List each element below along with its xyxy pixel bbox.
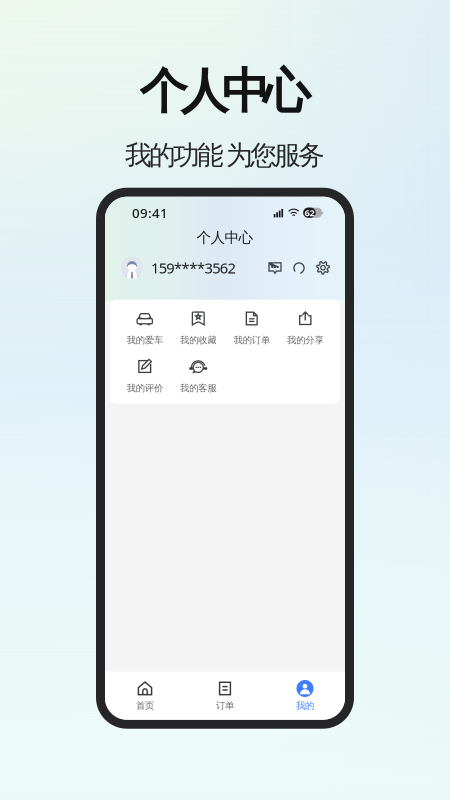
button[interactable]: 订单 [185,677,265,715]
staticText: 62 [304,206,314,219]
button[interactable]: Messages [268,261,282,275]
button[interactable]: 我的评价 [118,360,171,392]
button[interactable]: 我的分享 [278,312,332,344]
button[interactable]: 我的 [265,677,345,715]
button[interactable]: 我的客服 [171,360,225,392]
staticText: 个人中心 [139,62,310,121]
staticText: 首页 [136,700,154,711]
staticText: 09:41 [132,204,168,222]
button[interactable]: 我的收藏 [171,312,225,344]
staticText: 个人中心 [196,229,253,247]
button[interactable]: 我的爱车 [118,312,171,344]
button[interactable]: Settings [316,261,330,275]
button[interactable]: Customer service [292,261,306,275]
staticText: 我的评价 [127,382,163,394]
staticText: 我的分享 [287,334,323,346]
button[interactable]: 首页 [105,677,185,715]
staticText: 订单 [216,700,234,711]
staticText: 我的客服 [180,382,216,394]
staticText: 我的功能 为您服务 [125,139,325,172]
staticText: 我的爱车 [127,334,163,346]
staticText: 我的收藏 [180,334,216,346]
staticText: 159****3562 [151,258,235,277]
staticText: 我的订单 [234,334,270,346]
staticText: 我的 [296,700,314,711]
button[interactable]: 我的订单 [225,312,278,344]
